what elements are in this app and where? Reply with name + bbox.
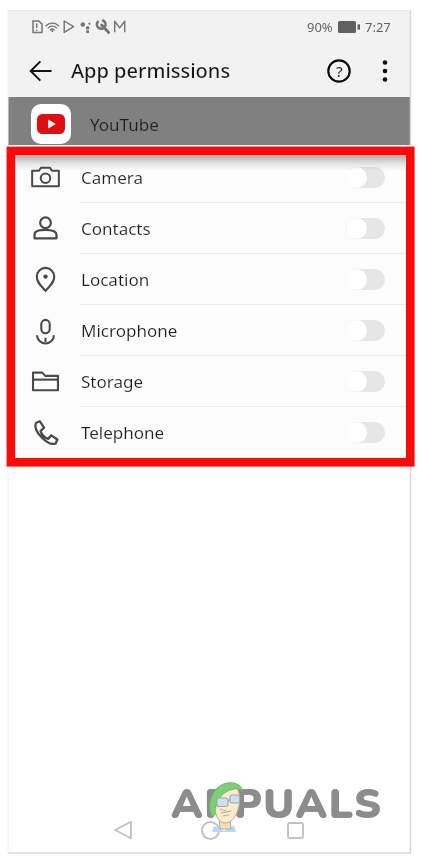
button[interactable]: Microphone: [8, 305, 410, 356]
staticText: Telephone: [81, 421, 165, 444]
button[interactable]: Toggle Microphone: [346, 320, 385, 341]
button[interactable]: Toggle Camera: [346, 167, 385, 188]
button[interactable]: Recents: [279, 814, 311, 846]
button[interactable]: Back: [107, 814, 139, 846]
button[interactable]: Home: [194, 814, 226, 846]
staticText: Location: [81, 268, 150, 291]
button[interactable]: Help: [319, 51, 359, 91]
staticText: 90%: [307, 18, 333, 36]
button[interactable]: Camera: [8, 152, 410, 203]
button[interactable]: Toggle Contacts: [346, 218, 385, 239]
button[interactable]: Location: [8, 254, 410, 305]
button[interactable]: Toggle Location: [346, 269, 385, 290]
staticText: Contacts: [81, 217, 151, 240]
staticText: YouTube: [90, 113, 159, 136]
button[interactable]: YouTube: [8, 97, 410, 145]
staticText: Microphone: [81, 319, 178, 342]
button[interactable]: Toggle Telephone: [346, 422, 385, 443]
button[interactable]: Telephone: [8, 407, 410, 458]
staticText: App permissions: [71, 57, 231, 84]
button[interactable]: Storage: [8, 356, 410, 407]
staticText: Storage: [81, 370, 144, 393]
staticText: ?: [336, 61, 343, 81]
staticText: Camera: [81, 166, 143, 189]
button[interactable]: Contacts: [8, 203, 410, 254]
button[interactable]: Toggle Storage: [346, 371, 385, 392]
button[interactable]: More options: [365, 51, 405, 91]
staticText: 7:27: [365, 18, 391, 36]
staticText: APPUALS: [171, 776, 383, 833]
button[interactable]: Back: [23, 53, 59, 89]
